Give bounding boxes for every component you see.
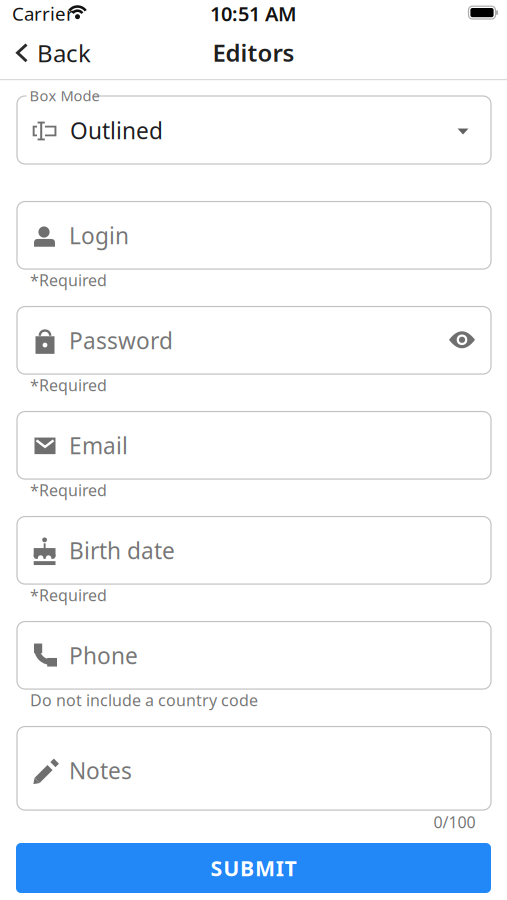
button[interactable]: Phone (17, 621, 491, 689)
staticText: Phone (69, 640, 138, 670)
staticText: SUBMIT (210, 854, 296, 882)
button[interactable]: Birth date (17, 516, 491, 584)
staticText: Carrier (12, 1, 74, 26)
staticText: Password (69, 325, 173, 355)
staticText: Do not include a country code (30, 689, 258, 711)
staticText: *Required (30, 374, 107, 396)
staticText: Outlined (70, 115, 163, 145)
staticText: Editors (212, 37, 294, 68)
button[interactable]: Email (17, 412, 491, 479)
staticText: Notes (69, 755, 132, 786)
button[interactable]: Back (15, 37, 135, 69)
staticText: Back (37, 37, 91, 69)
button[interactable]: Notes (17, 726, 491, 810)
staticText: *Required (30, 269, 107, 291)
button[interactable]: SUBMIT (16, 843, 491, 893)
staticText: Birth date (69, 535, 175, 565)
button[interactable]: Show password (447, 325, 477, 355)
staticText: Login (69, 220, 129, 250)
button[interactable]: Password (17, 307, 491, 374)
staticText: Box Mode (29, 86, 99, 105)
button[interactable]: Login (17, 202, 491, 269)
staticText: Email (69, 430, 128, 460)
staticText: *Required (30, 479, 107, 501)
staticText: *Required (30, 584, 107, 606)
button[interactable]: Box Mode (17, 96, 491, 164)
staticText: 0/100 (433, 811, 475, 833)
staticText: 10:51 AM (210, 0, 297, 27)
